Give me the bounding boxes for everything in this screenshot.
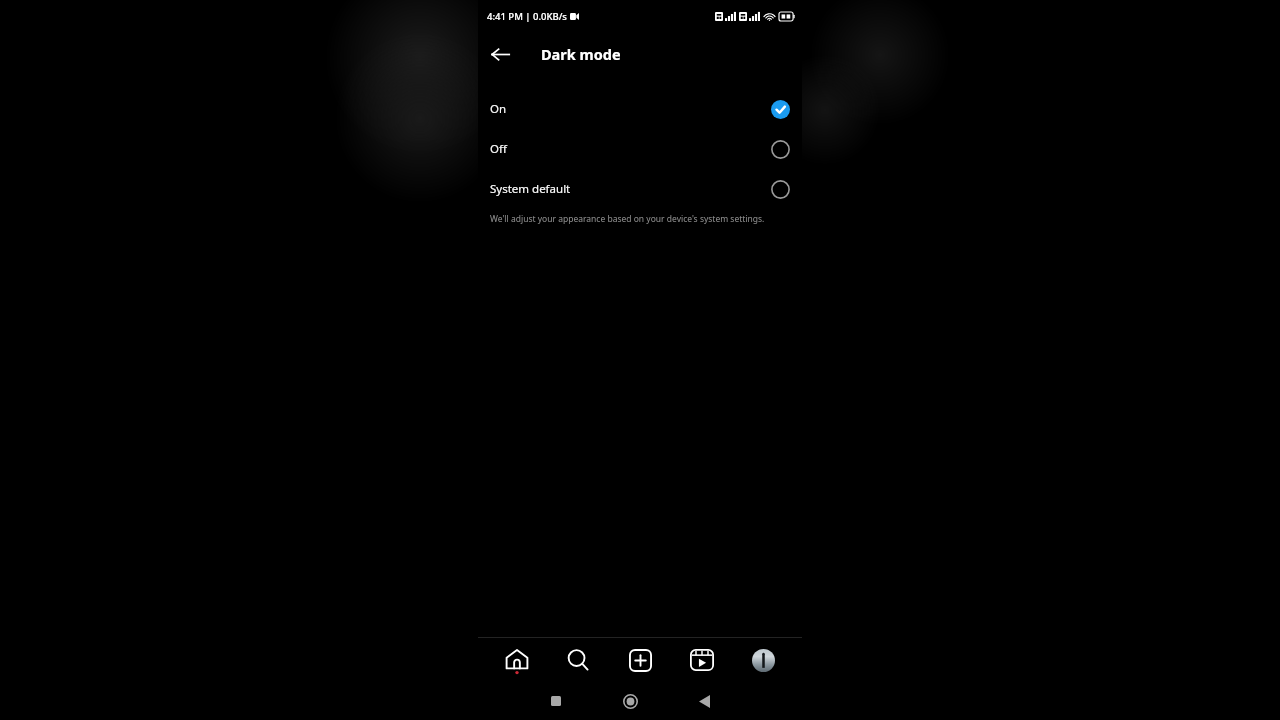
- staticText: On: [490, 101, 507, 117]
- button[interactable]: Search: [555, 638, 601, 682]
- button[interactable]: Back: [478, 32, 522, 76]
- staticText: Dark mode: [541, 44, 621, 64]
- button[interactable]: On: [478, 89, 802, 129]
- button[interactable]: Reels: [679, 638, 725, 682]
- staticText: Off: [490, 141, 507, 157]
- button[interactable]: Home: [610, 682, 650, 720]
- button[interactable]: Off: [478, 129, 802, 169]
- staticText: 4:41 PM | 0.0KB/s: [487, 10, 567, 23]
- button[interactable]: Recent apps: [536, 682, 576, 720]
- button[interactable]: Home: [494, 638, 540, 682]
- staticText: System default: [490, 181, 571, 197]
- staticText: We'll adjust your appearance based on yo…: [490, 213, 774, 225]
- button[interactable]: Back: [684, 682, 724, 720]
- button[interactable]: Profile: [740, 638, 786, 682]
- button[interactable]: Create: [617, 638, 663, 682]
- button[interactable]: System default: [478, 169, 802, 209]
